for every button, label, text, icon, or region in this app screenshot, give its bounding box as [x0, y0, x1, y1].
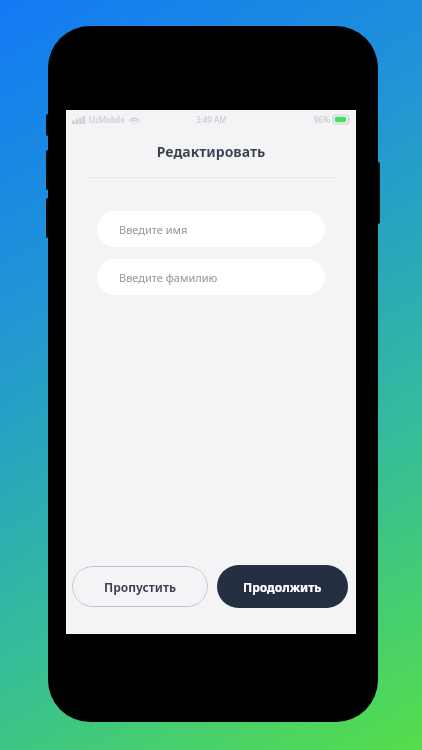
- staticText: Введите имя: [119, 222, 188, 237]
- staticText: 96%: [314, 114, 330, 125]
- staticText: Редактировать: [66, 142, 356, 161]
- button[interactable]: Продолжить: [217, 565, 348, 608]
- staticText: Продолжить: [243, 579, 322, 595]
- button[interactable]: Введите имя: [97, 211, 325, 247]
- staticText: UzMobile: [89, 114, 125, 125]
- button[interactable]: Пропустить: [72, 566, 208, 607]
- staticText: Введите фамилию: [119, 270, 218, 285]
- staticText: 3:49 AM: [196, 114, 227, 125]
- button[interactable]: Введите фамилию: [97, 259, 325, 295]
- staticText: Пропустить: [104, 579, 177, 595]
